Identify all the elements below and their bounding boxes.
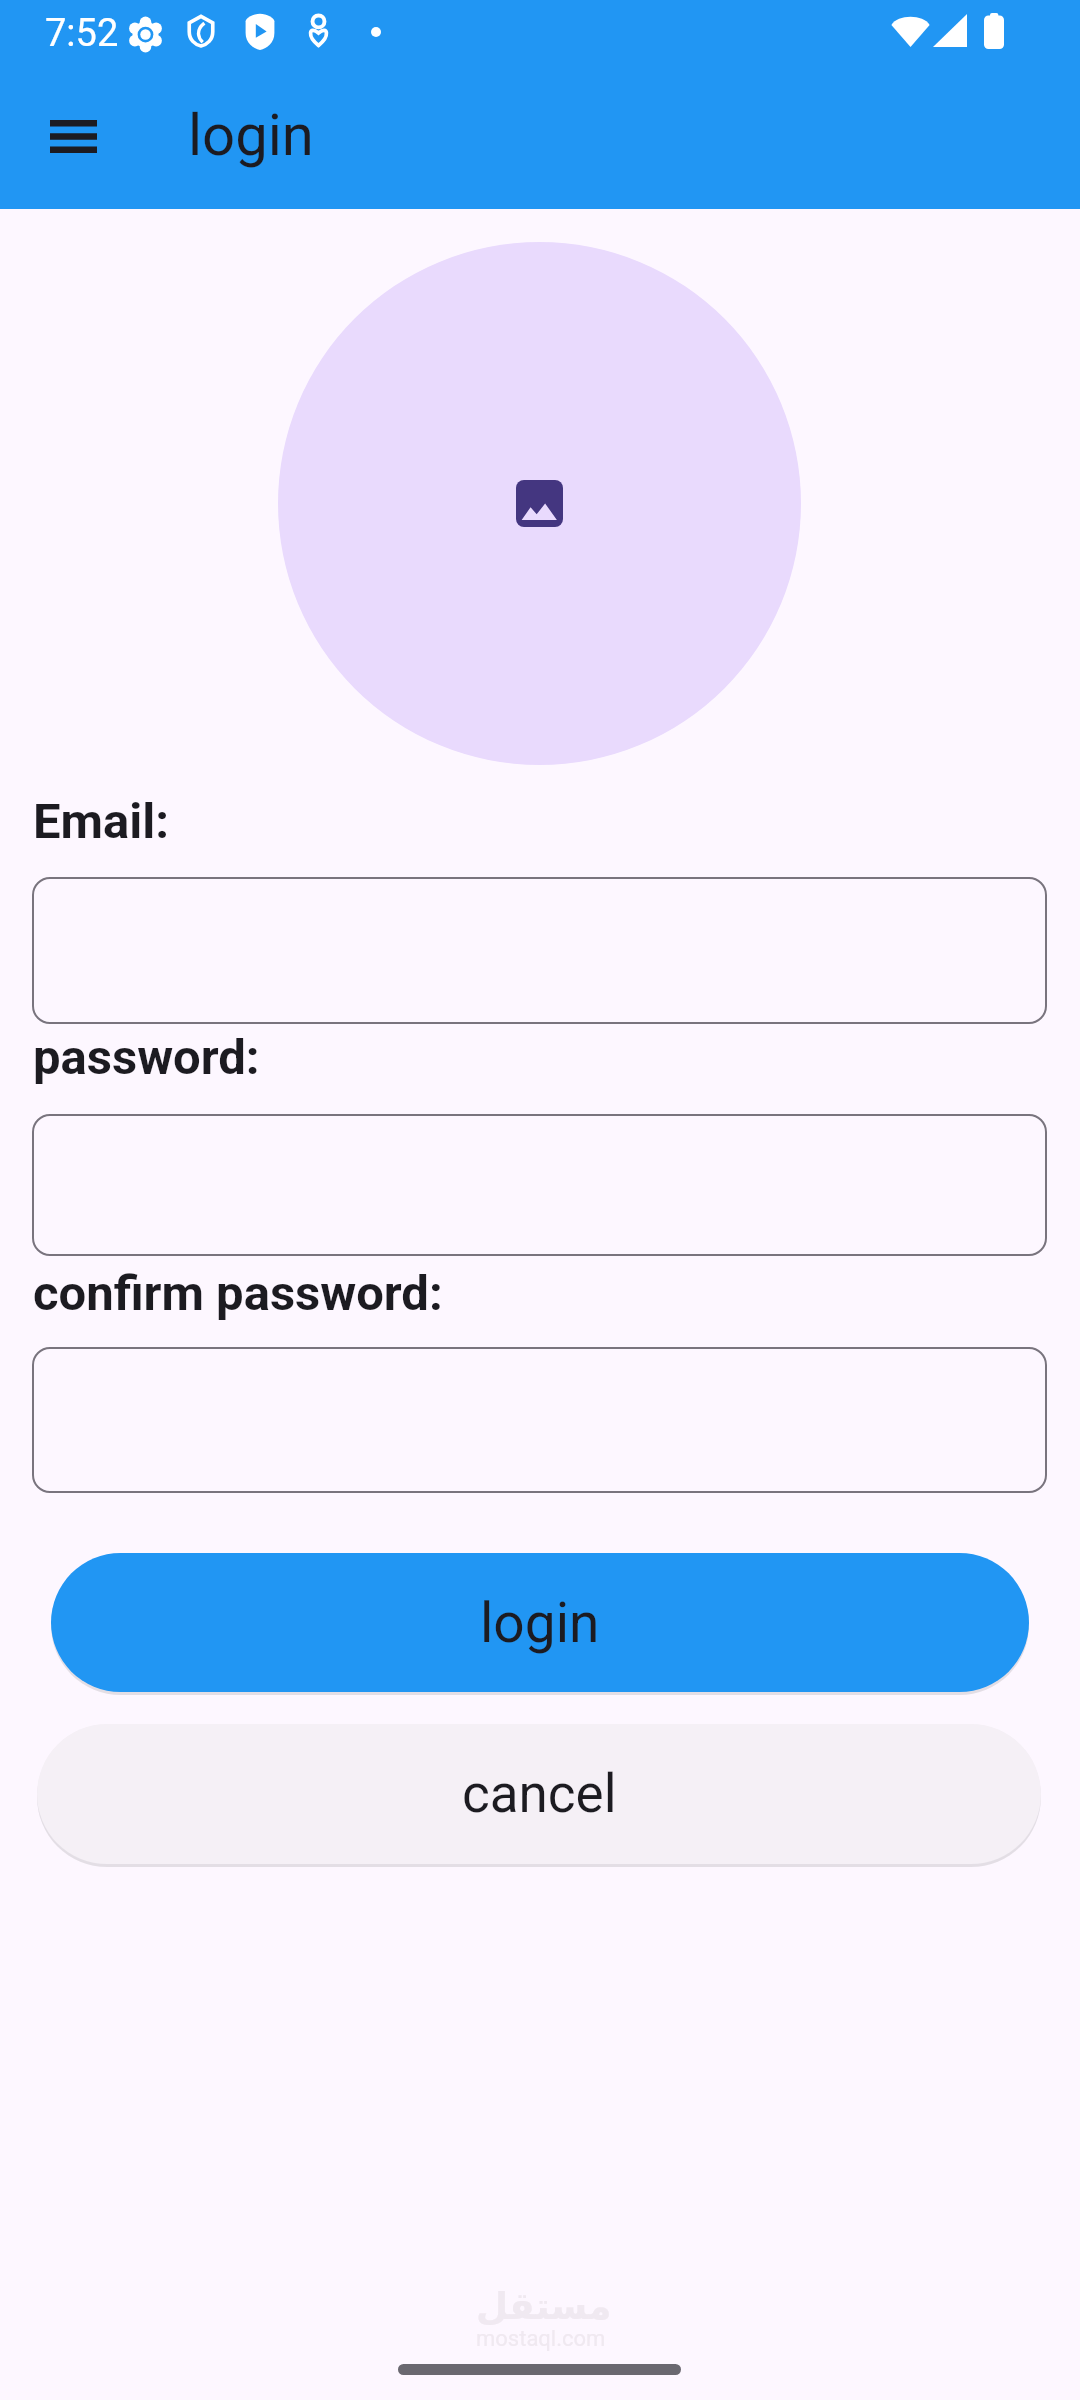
staticText: Email:	[33, 793, 169, 850]
staticText: login	[188, 101, 314, 169]
button[interactable]	[32, 877, 1047, 1024]
staticText: password:	[33, 1029, 260, 1086]
button[interactable]: Profile image	[278, 242, 801, 765]
button[interactable]: login	[51, 1553, 1029, 1692]
button[interactable]	[32, 1114, 1047, 1256]
staticText: cancel	[462, 1763, 617, 1825]
staticText: login	[480, 1591, 600, 1655]
staticText: mostaql.com	[476, 2326, 606, 2352]
button[interactable]: Menu	[26, 90, 120, 182]
button[interactable]: cancel	[37, 1724, 1041, 1864]
button[interactable]	[32, 1347, 1047, 1493]
staticText: 7:52	[45, 11, 119, 56]
staticText: confirm password:	[33, 1265, 443, 1322]
staticText: مستقل	[476, 2285, 612, 2328]
